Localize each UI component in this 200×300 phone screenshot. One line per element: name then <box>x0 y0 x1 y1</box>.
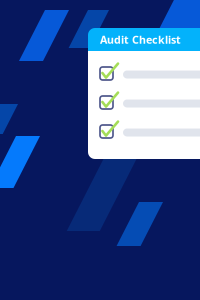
staticText: Audit Checklist <box>100 32 181 47</box>
button[interactable] <box>100 93 200 109</box>
button[interactable] <box>100 122 200 138</box>
button[interactable] <box>100 64 200 80</box>
